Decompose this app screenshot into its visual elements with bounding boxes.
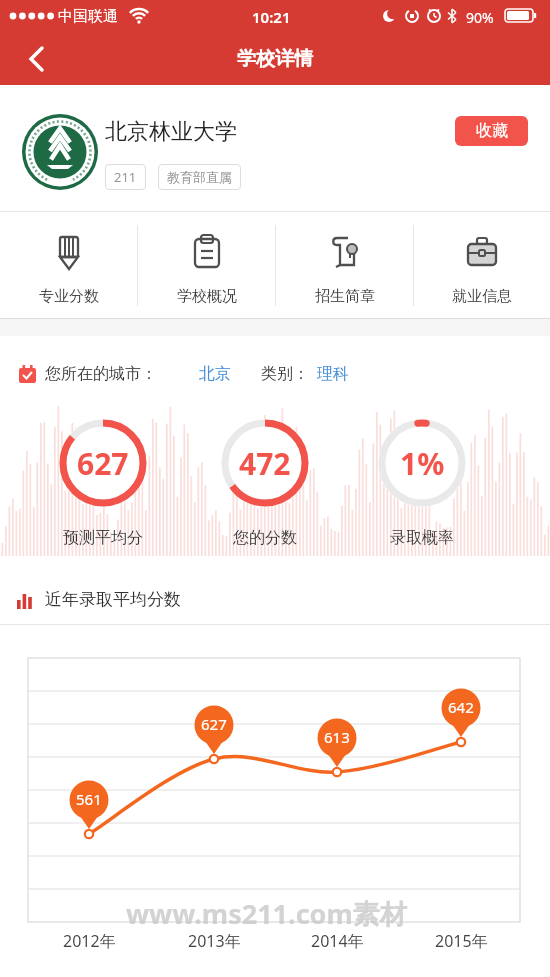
staticText: 学校详情: [237, 47, 313, 71]
staticText: 472: [239, 443, 291, 484]
staticText: 2012年: [63, 930, 116, 952]
staticText: 类别：: [261, 364, 309, 384]
button[interactable]: 专业分数: [0, 213, 137, 318]
staticText: 北京林业大学: [105, 118, 237, 146]
staticText: 2014年: [311, 930, 364, 952]
staticText: 613: [324, 727, 350, 747]
button[interactable]: [22, 114, 98, 190]
staticText: 招生简章: [315, 287, 375, 306]
staticText: www.ms211.com素材: [126, 895, 407, 932]
staticText: 理科: [317, 364, 349, 384]
staticText: 您所在的城市：: [45, 364, 157, 384]
staticText: 就业信息: [452, 287, 512, 306]
staticText: 北京: [199, 364, 231, 384]
button[interactable]: 招生简章: [276, 213, 413, 318]
button[interactable]: 您所在的城市：: [19, 360, 349, 388]
staticText: 2015年: [435, 930, 488, 952]
staticText: 教育部直属: [167, 169, 232, 185]
staticText: 预测平均分: [63, 528, 143, 548]
staticText: 90%: [466, 8, 494, 27]
staticText: 您的分数: [233, 528, 297, 548]
button[interactable]: 收藏: [455, 116, 528, 146]
staticText: 211: [114, 168, 137, 186]
button[interactable]: 就业信息: [414, 213, 550, 318]
staticText: 近年录取平均分数: [45, 589, 181, 610]
staticText: 1%: [400, 443, 445, 484]
staticText: 561: [76, 789, 102, 809]
button[interactable]: 学校概况: [138, 213, 275, 318]
staticText: 627: [77, 443, 129, 484]
staticText: 642: [448, 697, 474, 717]
staticText: 学校概况: [177, 287, 237, 306]
staticText: 10:21: [252, 7, 291, 27]
staticText: 专业分数: [39, 287, 99, 306]
staticText: 收藏: [476, 121, 508, 141]
staticText: 录取概率: [390, 528, 454, 548]
staticText: 2013年: [188, 930, 241, 952]
staticText: 627: [201, 714, 227, 734]
staticText: 中国联通: [58, 7, 118, 26]
button[interactable]: [28, 46, 46, 72]
